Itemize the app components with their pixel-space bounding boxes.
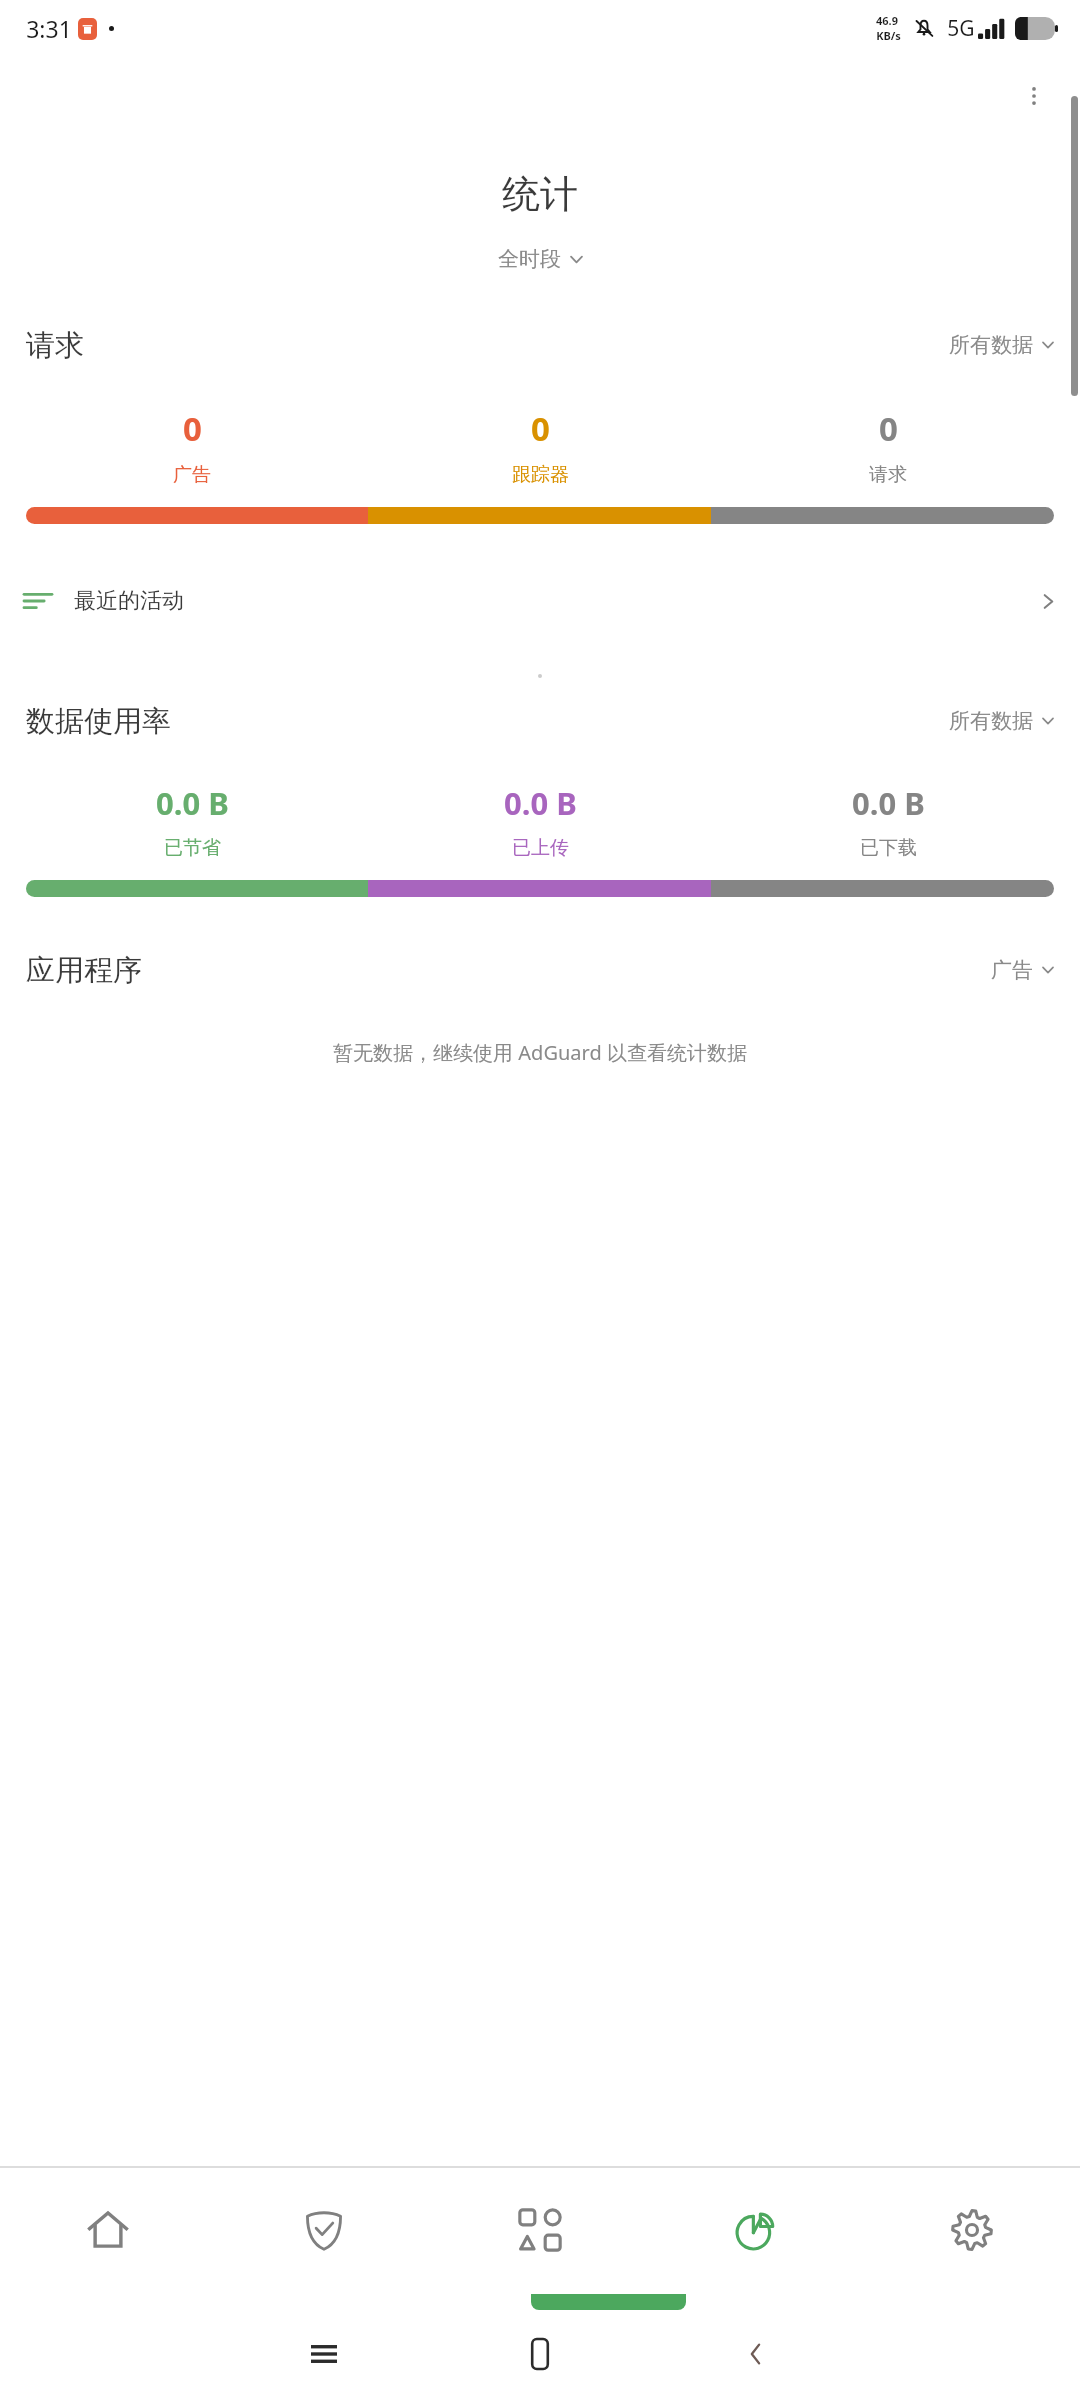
button[interactable]: 最近的活动 xyxy=(0,570,1080,632)
staticText: 0.0 B xyxy=(504,782,577,824)
staticText: 广告 xyxy=(991,957,1033,983)
button[interactable]: 0.0 B xyxy=(714,782,1062,860)
staticText: 数据使用率 xyxy=(26,703,171,740)
staticText: 所有数据 xyxy=(949,332,1033,358)
button[interactable]: 0 xyxy=(366,406,714,487)
button[interactable]: 所有数据 xyxy=(949,700,1054,742)
button[interactable]: Back xyxy=(648,2308,864,2400)
staticText: 已上传 xyxy=(512,836,569,860)
button[interactable]: More options xyxy=(1010,72,1058,120)
button[interactable]: 0.0 B xyxy=(18,782,366,860)
button[interactable]: Protection xyxy=(216,2168,432,2292)
staticText: 请求 xyxy=(869,463,907,487)
button[interactable]: 所有数据 xyxy=(949,324,1054,366)
button[interactable]: Recents xyxy=(216,2308,432,2400)
staticText: 0.0 B xyxy=(852,782,925,824)
button[interactable]: Statistics xyxy=(648,2168,864,2292)
button[interactable]: 0.0 B xyxy=(366,782,714,860)
button[interactable]: 全时段 xyxy=(0,246,1080,272)
staticText: 所有数据 xyxy=(949,708,1033,734)
staticText: KB/s xyxy=(876,28,901,43)
button[interactable]: 广告 xyxy=(991,949,1054,991)
button[interactable]: 0 xyxy=(18,406,366,487)
staticText: 请求 xyxy=(26,327,84,364)
staticText: 统计 xyxy=(502,170,578,218)
staticText: 暂无数据，继续使用 AdGuard 以查看统计数据 xyxy=(333,1039,747,1066)
staticText: 0.0 B xyxy=(156,782,229,824)
staticText: 0 xyxy=(531,406,550,451)
staticText: 46.9 xyxy=(876,13,898,28)
staticText: 广告 xyxy=(173,463,211,487)
staticText: 全时段 xyxy=(498,246,561,272)
button[interactable]: Home xyxy=(432,2308,648,2400)
button[interactable]: 0 xyxy=(714,406,1062,487)
staticText: 最近的活动 xyxy=(74,587,184,615)
staticText: 5G xyxy=(947,14,975,43)
button[interactable]: Apps xyxy=(432,2168,648,2292)
button[interactable]: Home xyxy=(0,2168,216,2292)
staticText: 已节省 xyxy=(164,836,221,860)
staticText: 已下载 xyxy=(860,836,917,860)
button[interactable]: Settings xyxy=(864,2168,1080,2292)
staticText: 0 xyxy=(183,406,202,451)
staticText: 0 xyxy=(879,406,898,451)
staticText: 跟踪器 xyxy=(512,463,569,487)
staticText: 3:31 xyxy=(26,13,72,44)
staticText: 应用程序 xyxy=(26,952,142,989)
